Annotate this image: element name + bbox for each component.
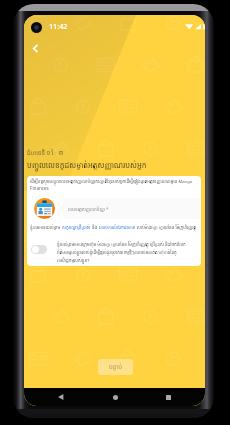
button[interactable]: លេខអត្តសញ្ញាណប័ណ្ណ *	[63, 198, 200, 219]
staticText: បញ្ចូលលេខកូដសម្ងាត់អត្តសញ្ញាណរបស់អ្នក	[27, 160, 147, 170]
staticText: Finances	[30, 185, 49, 191]
button[interactable]: Recent apps	[161, 390, 175, 404]
staticText: លក្ខខណ្ឌប្រើប្រាស់	[62, 225, 91, 231]
staticText: ខ្ញុំបានអានយល់ព្រម	[30, 225, 62, 231]
button[interactable]: ខ្ញុំបានអានយល់ព្រម	[30, 225, 197, 231]
staticText: លេខអត្តសញ្ញាណប័ណ្ណ *	[68, 206, 109, 212]
staticText: បន្ទាប់	[109, 363, 123, 371]
button[interactable]: Back	[54, 390, 68, 404]
button[interactable]: Home	[108, 390, 122, 404]
staticText: ខ្ញុំយល់ព្រមអោយក្រុមហ៊ុន ម៉ាងហ្គោ ហ្វាយន…	[57, 242, 190, 263]
staticText: ជំហានទី ១ ៃ ៣	[27, 149, 64, 157]
staticText: 11:42	[49, 21, 68, 31]
button[interactable]: Back	[27, 40, 43, 56]
button[interactable]: បន្ទាប់	[98, 359, 133, 375]
staticText: និង	[91, 225, 99, 231]
staticText: ដើម្បីបន្តសូមបញ្ចូលលេខអត្តសញ្ញាណប័ណ្ណសញ្…	[30, 179, 193, 185]
staticText: គោលការណ៍ឯកជនភាព	[99, 225, 136, 231]
button[interactable]: Consent toggle	[31, 245, 47, 254]
staticText: របស់ម៉ាងហ្គោ ហ្វាយនែន ម៉ៃក្រូហិរញ្ញវត្ថុ	[136, 225, 197, 231]
